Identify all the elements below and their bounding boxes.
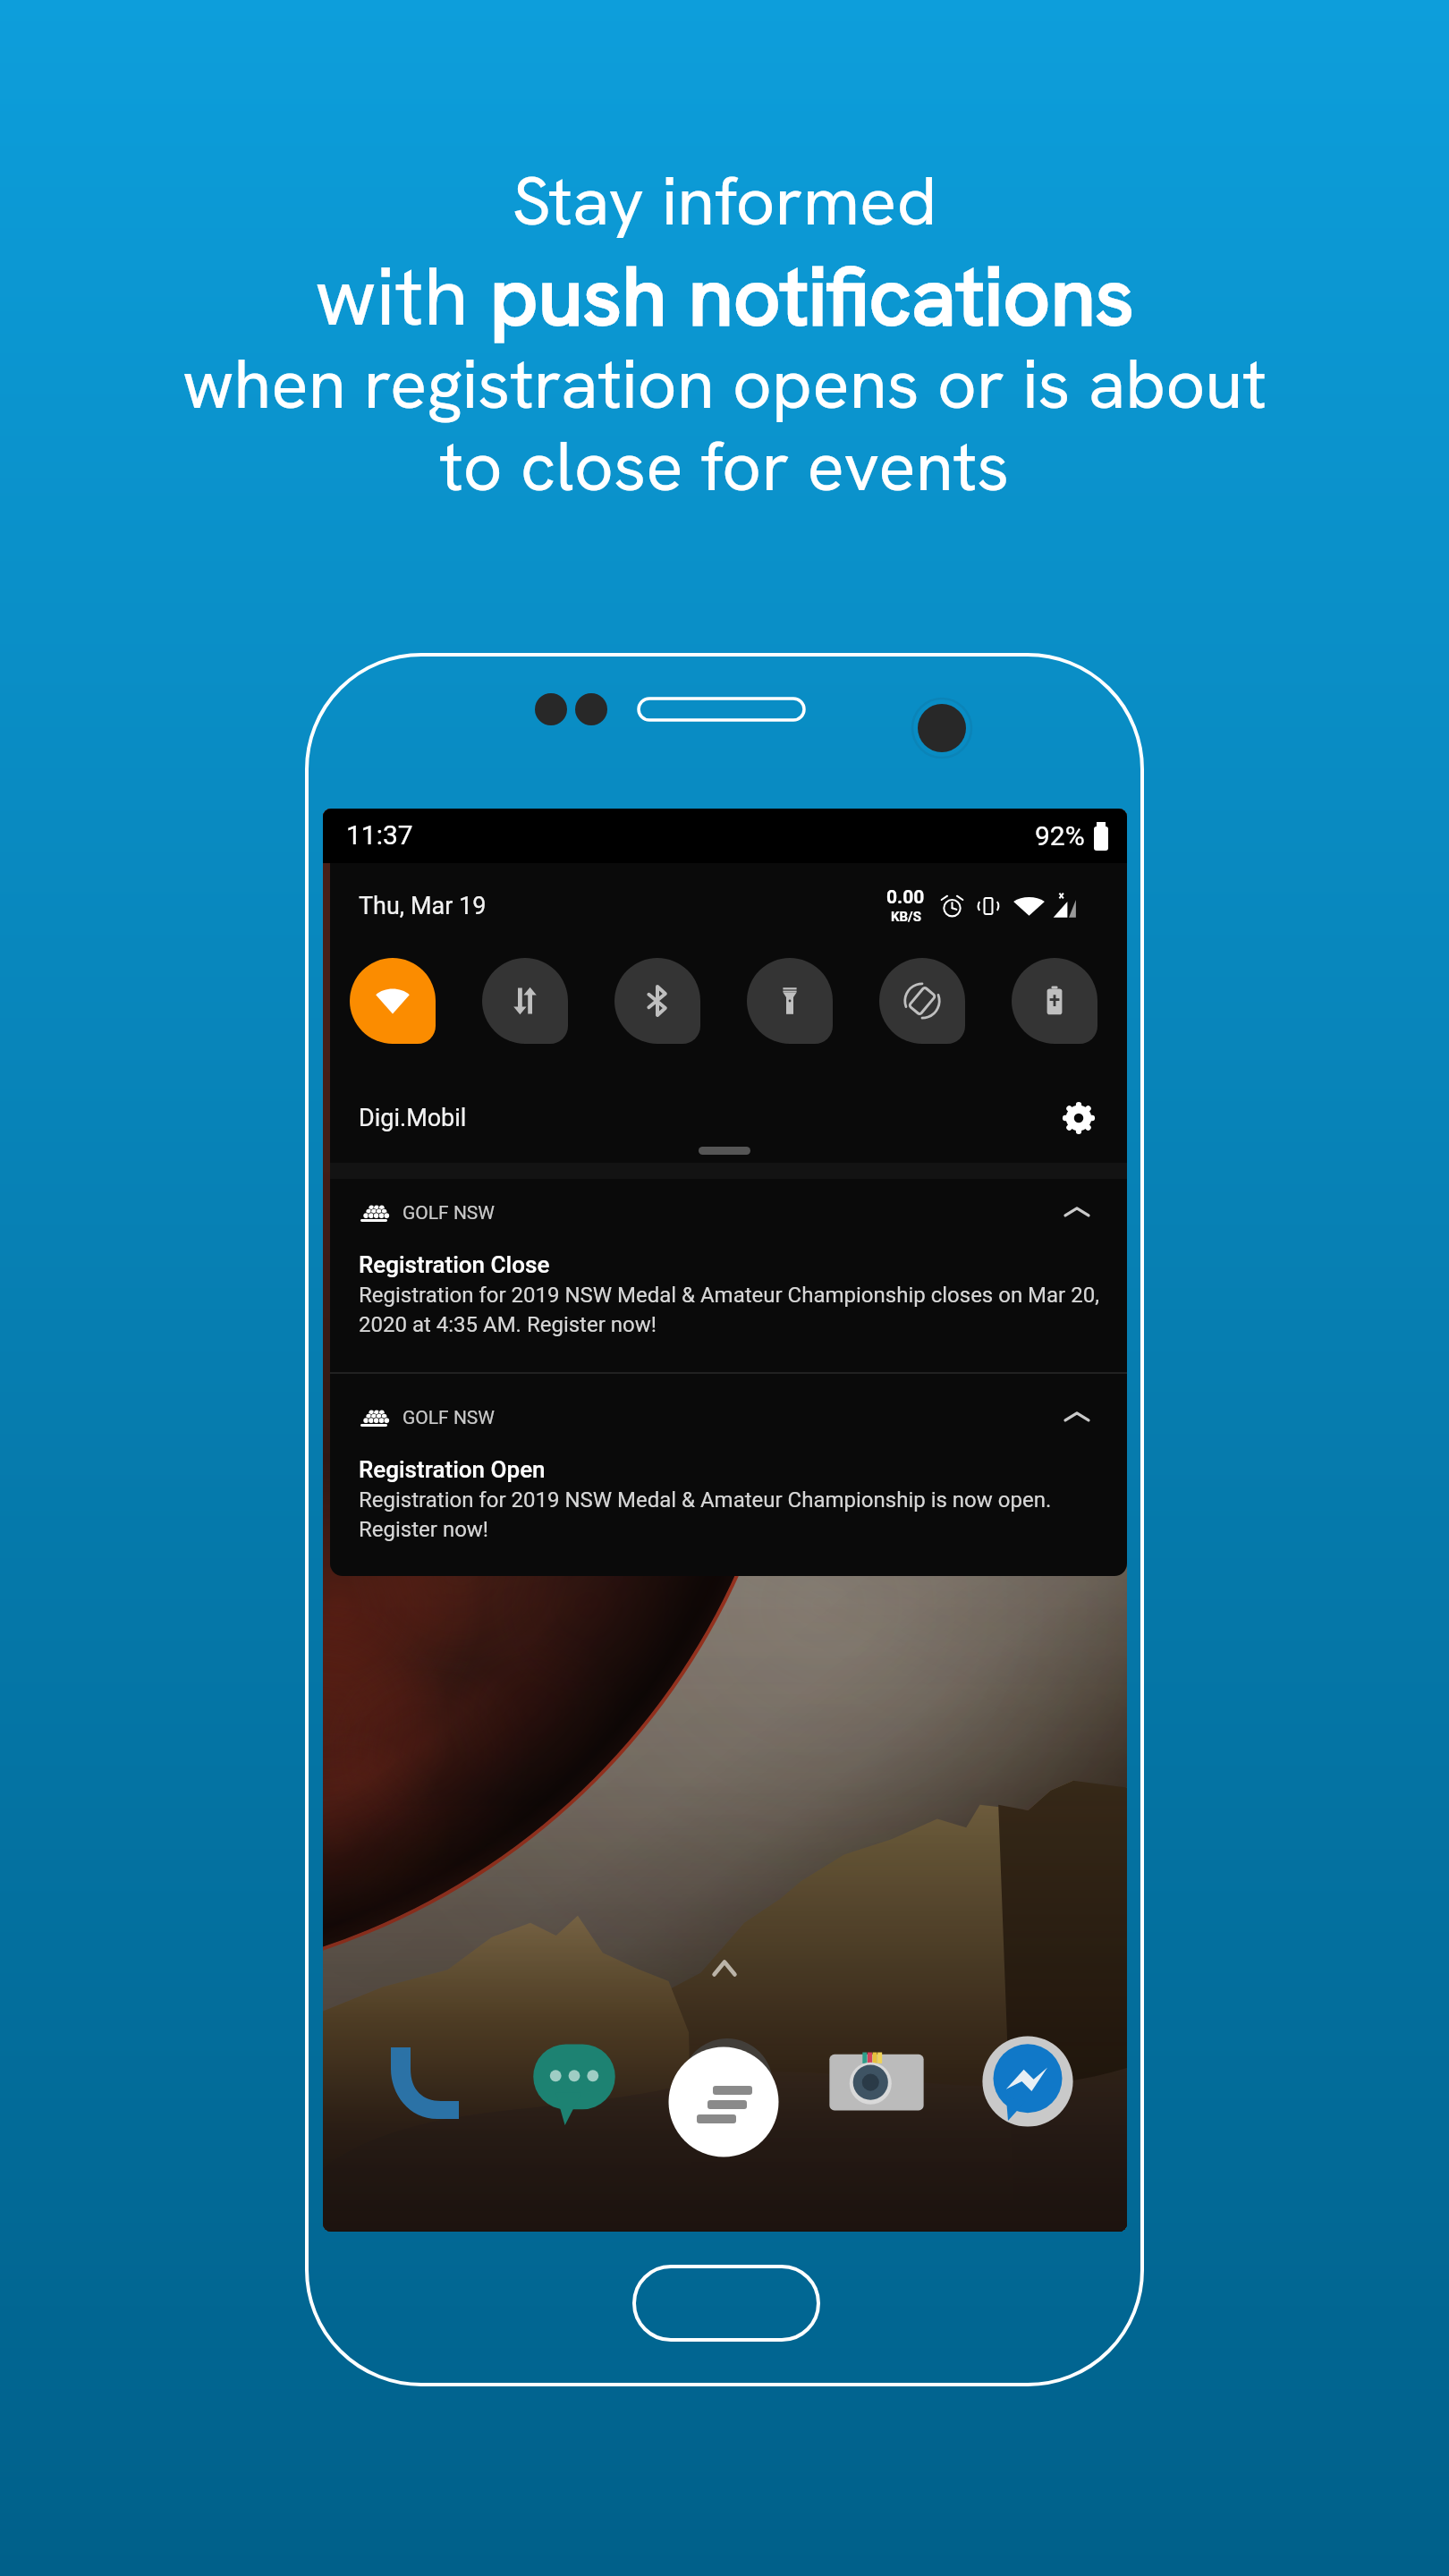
button[interactable]: Quick setting — [879, 958, 965, 1044]
staticText: Stay informed — [0, 156, 1449, 245]
staticText: Digi.Mobil — [359, 1104, 467, 1132]
staticText: with push notifications — [0, 242, 1449, 350]
button[interactable]: Quick setting — [614, 958, 700, 1044]
button[interactable] — [330, 1394, 1127, 1563]
staticText: when registration opens or is about — [0, 339, 1449, 428]
button[interactable]: Quick setting — [747, 958, 833, 1044]
button[interactable]: Quick setting — [1012, 958, 1097, 1044]
staticText: Registration for 2019 NSW Medal & Amateu… — [359, 1283, 1099, 1337]
button[interactable]: Quick setting — [350, 958, 436, 1044]
button[interactable]: Quick setting — [482, 958, 568, 1044]
staticText: Thu, Mar 19 — [359, 892, 487, 920]
staticText: GOLF NSW — [402, 1407, 495, 1429]
staticText: 0.00 — [886, 886, 925, 909]
staticText: 92% — [1035, 820, 1085, 852]
staticText: to close for events — [0, 421, 1449, 511]
staticText: Registration Open — [359, 1456, 546, 1483]
button[interactable]: Camera — [826, 2031, 927, 2131]
button[interactable]: Settings — [1060, 1099, 1097, 1137]
button[interactable]: Messages — [528, 2035, 621, 2128]
staticText: GOLF NSW — [402, 1202, 495, 1224]
button[interactable] — [330, 1189, 1127, 1359]
staticText: Registration Close — [359, 1251, 550, 1278]
staticText: Registration for 2019 NSW Medal & Amateu… — [359, 1487, 1052, 1542]
button[interactable]: Phone — [378, 2037, 468, 2126]
button[interactable]: Messenger — [979, 2032, 1077, 2131]
staticText: KB/S — [891, 909, 921, 925]
button[interactable]: All apps — [661, 2039, 786, 2165]
staticText: 11:37 — [346, 819, 413, 851]
